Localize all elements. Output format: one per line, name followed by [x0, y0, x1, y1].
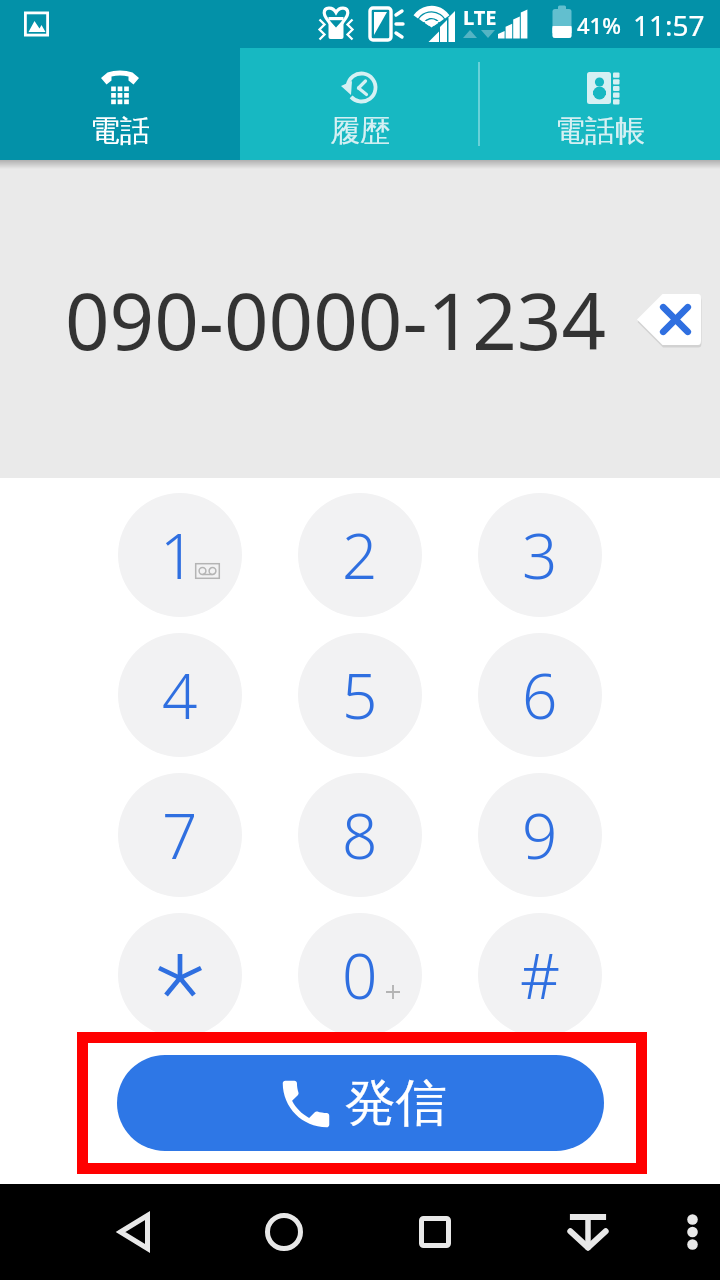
button[interactable]: 5 — [298, 633, 422, 757]
staticText: 発信 — [345, 1071, 447, 1135]
button[interactable]: 7 — [118, 773, 242, 897]
staticText: 3 — [522, 513, 558, 597]
button[interactable]: 8 — [298, 773, 422, 897]
staticText: 8 — [342, 793, 378, 877]
staticText: 5 — [342, 653, 378, 737]
button[interactable]: Recent apps — [399, 1196, 471, 1268]
button[interactable]: 6 — [478, 633, 602, 757]
staticText: 電話 — [90, 112, 150, 150]
staticText: 電話帳 — [555, 112, 645, 150]
staticText: 履歴 — [330, 112, 390, 150]
button[interactable]: Hide keyboard — [552, 1196, 624, 1268]
staticText: 7 — [162, 793, 198, 877]
button[interactable]: More options — [664, 1204, 720, 1260]
staticText: LTE — [463, 4, 497, 31]
button[interactable]: 2 — [298, 493, 422, 617]
button[interactable]: 9 — [478, 773, 602, 897]
staticText: 9 — [522, 793, 558, 877]
button[interactable]: Backspace — [629, 294, 713, 360]
button[interactable]: 電話 — [0, 48, 240, 160]
button[interactable]: 電話帳 — [480, 48, 720, 160]
staticText: 6 — [522, 653, 558, 737]
button[interactable]: 4 — [118, 633, 242, 757]
staticText: 41% — [577, 10, 621, 40]
staticText: 11:57 — [633, 6, 705, 44]
staticText: 090-0000-1234 — [65, 267, 607, 373]
staticText: # — [520, 933, 561, 1017]
staticText: 1 — [160, 513, 196, 597]
button[interactable]: 3 — [478, 493, 602, 617]
button[interactable]: Back — [98, 1196, 170, 1268]
staticText: 4 — [162, 653, 198, 737]
staticText: 2 — [342, 513, 378, 597]
button[interactable]: Home — [248, 1196, 320, 1268]
button[interactable]: 0 — [298, 913, 422, 1037]
staticText: 0 — [342, 933, 378, 1017]
button[interactable]: 1 — [118, 493, 242, 617]
button[interactable] — [118, 913, 242, 1037]
button[interactable]: # — [478, 913, 602, 1037]
button[interactable]: 発信 — [117, 1055, 604, 1151]
button[interactable]: 履歴 — [240, 48, 480, 160]
